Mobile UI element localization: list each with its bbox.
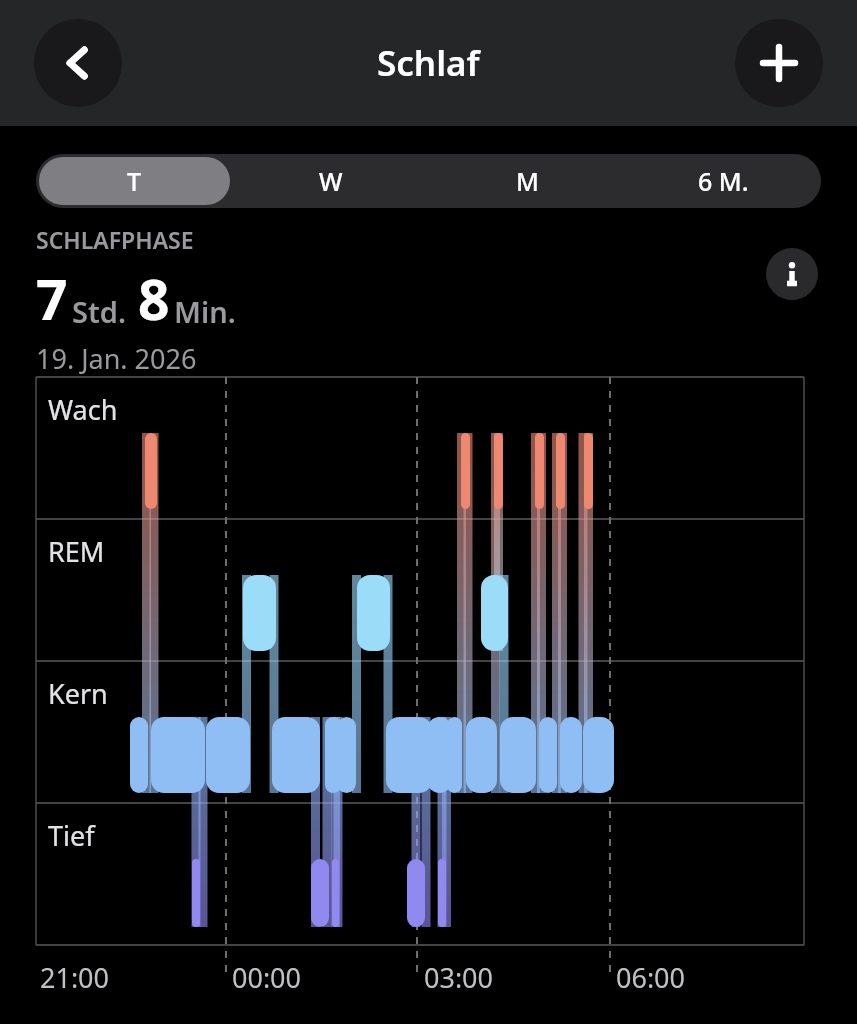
staticText: 03:00 xyxy=(424,959,494,996)
staticText: 8 xyxy=(138,261,170,336)
staticText: 6 M. xyxy=(698,164,749,198)
staticText: 21:00 xyxy=(40,959,110,996)
button[interactable]: T xyxy=(39,157,230,205)
staticText: SCHLAFPHASE xyxy=(36,224,194,255)
staticText: REM xyxy=(48,533,105,570)
staticText: 19. Jan. 2026 xyxy=(36,340,197,377)
staticText: M xyxy=(516,164,539,198)
button[interactable]: Add xyxy=(735,19,823,107)
staticText: T xyxy=(127,164,142,198)
staticText: Tief xyxy=(48,817,95,854)
button[interactable]: Info xyxy=(766,248,818,300)
button[interactable]: M xyxy=(432,157,622,205)
button[interactable]: Back xyxy=(34,19,122,107)
button[interactable]: 6 M. xyxy=(628,157,818,205)
staticText: Wach xyxy=(48,391,118,428)
staticText: 7 xyxy=(36,261,68,336)
staticText: 00:00 xyxy=(232,959,302,996)
staticText: Std. xyxy=(72,292,126,331)
staticText: Min. xyxy=(174,292,236,331)
staticText: W xyxy=(319,164,343,198)
staticText: 06:00 xyxy=(616,959,686,996)
staticText: Schlaf xyxy=(377,39,480,87)
staticText: Kern xyxy=(48,675,108,712)
button[interactable]: W xyxy=(236,157,426,205)
